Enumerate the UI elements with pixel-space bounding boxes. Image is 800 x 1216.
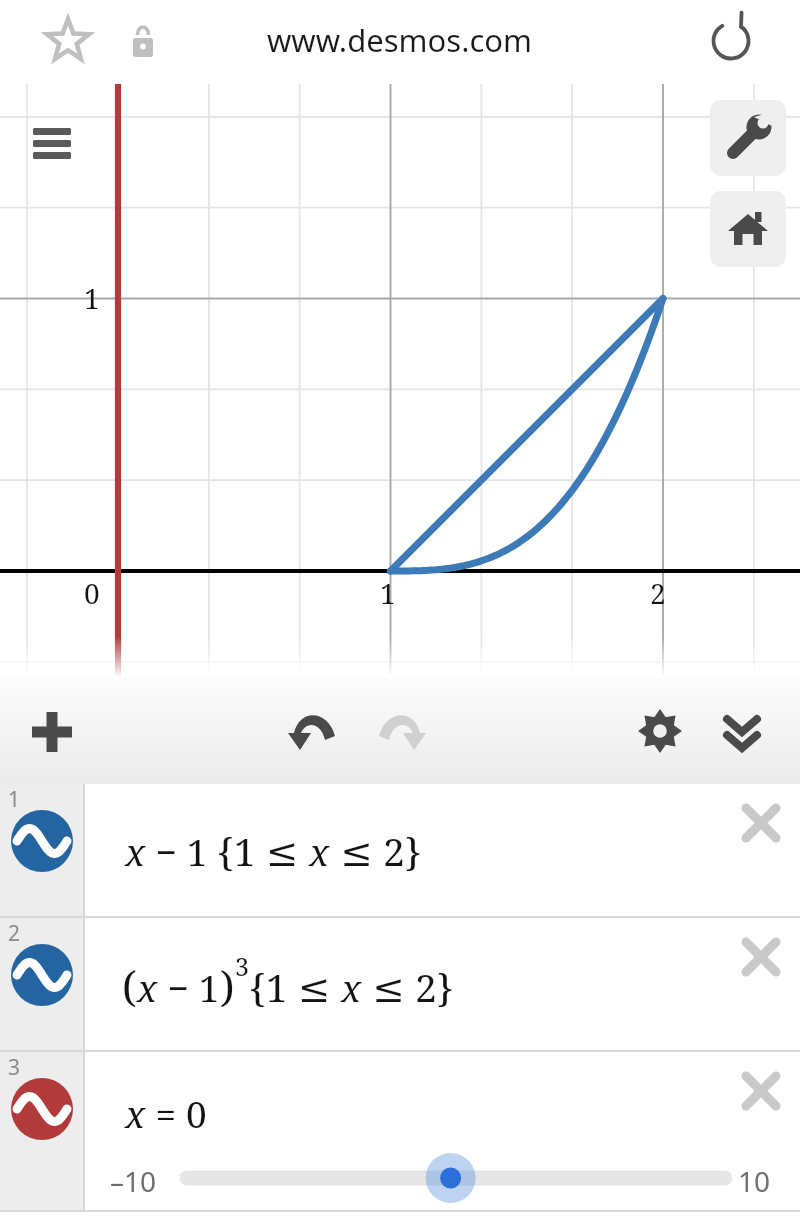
button[interactable]: Home view (710, 191, 786, 267)
staticText: 1 (380, 574, 396, 612)
staticText: 1 (8, 785, 21, 814)
staticText: {1 ≤ (217, 824, 309, 877)
staticText: 2 (650, 574, 666, 612)
button[interactable]: Redo (368, 702, 432, 766)
staticText: − 1 (158, 962, 220, 1012)
button[interactable]: Add expression (20, 700, 84, 764)
button[interactable]: Secure (118, 15, 168, 65)
staticText: x (341, 962, 362, 1012)
staticText: {1 ≤ (249, 960, 341, 1013)
button[interactable]: Bookmark (40, 13, 96, 69)
button[interactable]: Collapse list (710, 699, 774, 763)
staticText: www.desmos.com (267, 19, 533, 61)
button[interactable]: 3 (0, 1052, 800, 1212)
button[interactable]: 2 (0, 918, 800, 1052)
button[interactable]: Menu (22, 110, 84, 172)
staticText: ( (122, 957, 137, 1014)
staticText: − 1 (146, 826, 217, 876)
staticText: –10 (110, 1162, 157, 1200)
button[interactable]: Undo (282, 702, 346, 766)
staticText: x (309, 826, 330, 876)
staticText: = 0 (146, 1088, 207, 1138)
button[interactable]: Settings (628, 699, 692, 763)
staticText: 10 (738, 1162, 771, 1200)
button[interactable]: Slider for x (180, 1152, 732, 1208)
staticText: ≤ 2} (362, 960, 454, 1013)
button[interactable]: Delete expression (728, 924, 794, 990)
staticText: ) (220, 957, 235, 1014)
staticText: 3 (235, 949, 249, 983)
staticText: 1 (84, 279, 100, 317)
button[interactable]: Delete expression (728, 1058, 794, 1124)
staticText: x (137, 962, 158, 1012)
button[interactable]: Reload (703, 12, 759, 68)
staticText: x (125, 826, 146, 876)
button[interactable]: 1 (0, 784, 800, 918)
button[interactable]: Delete expression (728, 790, 794, 856)
staticText: x (125, 1088, 146, 1138)
staticText: 2 (8, 919, 21, 948)
staticText: ≤ 2} (330, 824, 422, 877)
button[interactable]: Graph settings (710, 100, 786, 176)
staticText: 0 (84, 574, 100, 612)
staticText: 3 (8, 1053, 21, 1082)
